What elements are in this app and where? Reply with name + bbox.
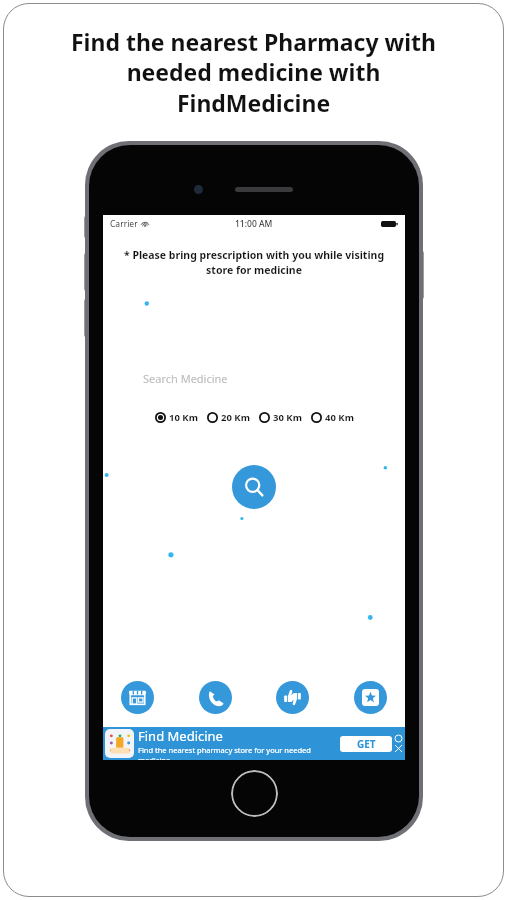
staticText: Carrier (110, 218, 138, 230)
staticText: 10 Km (169, 411, 198, 424)
button[interactable]: 40 Km (311, 411, 354, 424)
button[interactable]: Stores (121, 681, 154, 714)
staticText: 11:00 AM (235, 218, 273, 230)
staticText: * Please bring prescription with you whi… (111, 248, 397, 277)
other: Home (231, 770, 278, 817)
button[interactable]: Call (199, 681, 232, 714)
other: Close ad (395, 745, 402, 752)
staticText: Find the nearest Pharmacy with needed me… (14, 26, 493, 119)
staticText: Search Medicine (143, 371, 228, 386)
staticText: GET (357, 737, 376, 751)
button[interactable]: 30 Km (259, 411, 302, 424)
staticText: Find the nearest pharmacy store for your… (138, 745, 340, 760)
button[interactable]: Search (232, 465, 276, 509)
button[interactable]: GET (340, 736, 392, 752)
button[interactable]: Feedback (276, 681, 309, 714)
staticText: 40 Km (325, 411, 354, 424)
button[interactable]: Favourites (354, 681, 387, 714)
button[interactable]: Find Medicine (103, 727, 405, 760)
staticText: Find Medicine (138, 727, 223, 745)
button[interactable]: 10 Km (155, 411, 198, 424)
button[interactable]: 20 Km (207, 411, 250, 424)
other: Ad info (395, 735, 402, 742)
staticText: 30 Km (273, 411, 302, 424)
button[interactable]: Search Medicine (129, 363, 379, 393)
staticText: 20 Km (221, 411, 250, 424)
